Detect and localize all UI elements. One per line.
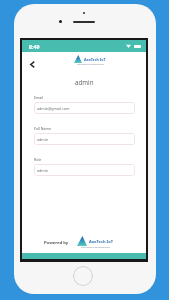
staticText: admin: [75, 78, 94, 86]
button[interactable]: admin: [34, 133, 135, 145]
staticText: Powered by: [44, 240, 69, 246]
staticText: your partner in iot infrastructure: [81, 246, 110, 249]
staticText: admin: [37, 137, 49, 142]
staticText: AxoTech IoT: [89, 239, 113, 244]
staticText: your partner in iot infrastructure: [77, 63, 104, 65]
button[interactable]: admin@gmail.com: [34, 102, 135, 114]
staticText: 8:49: [29, 43, 40, 50]
staticText: AxoTech IoT: [84, 57, 106, 62]
button[interactable]: admin: [34, 164, 135, 176]
button[interactable]: Back: [25, 57, 39, 71]
staticText: admin: [37, 168, 49, 173]
staticText: Email: [34, 95, 44, 100]
staticText: admin@gmail.com: [37, 106, 70, 111]
staticText: Role: [34, 157, 42, 162]
staticText: Full Name: [34, 126, 52, 131]
